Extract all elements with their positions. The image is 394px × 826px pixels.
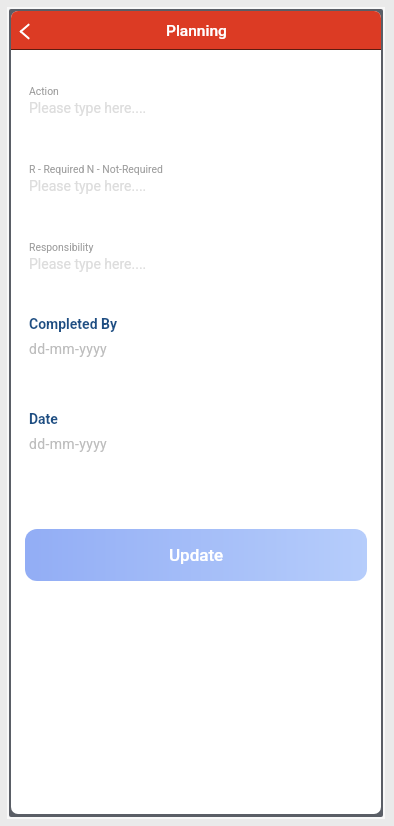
button[interactable]: Completed By	[29, 310, 367, 360]
staticText: dd-mm-yyyy	[29, 341, 108, 357]
staticText: Action	[29, 85, 59, 97]
button[interactable]: Responsibility	[29, 235, 367, 275]
staticText: R - Required N - Not-Required	[29, 163, 163, 175]
button[interactable]: Date	[29, 405, 367, 455]
staticText: Please type here....	[29, 178, 147, 194]
staticText: Completed By	[29, 316, 117, 332]
staticText: Please type here....	[29, 256, 147, 272]
staticText: Please type here....	[29, 100, 147, 116]
staticText: dd-mm-yyyy	[29, 436, 108, 452]
staticText: Responsibility	[29, 241, 94, 253]
button[interactable]: R - Required N - Not-Required	[29, 157, 367, 197]
staticText: Update	[169, 545, 224, 565]
button[interactable]: Action	[29, 79, 367, 119]
button[interactable]: Navigate back	[11, 18, 37, 44]
button[interactable]: Update	[25, 529, 367, 581]
staticText: Planning	[166, 22, 227, 40]
staticText: Date	[29, 411, 58, 427]
